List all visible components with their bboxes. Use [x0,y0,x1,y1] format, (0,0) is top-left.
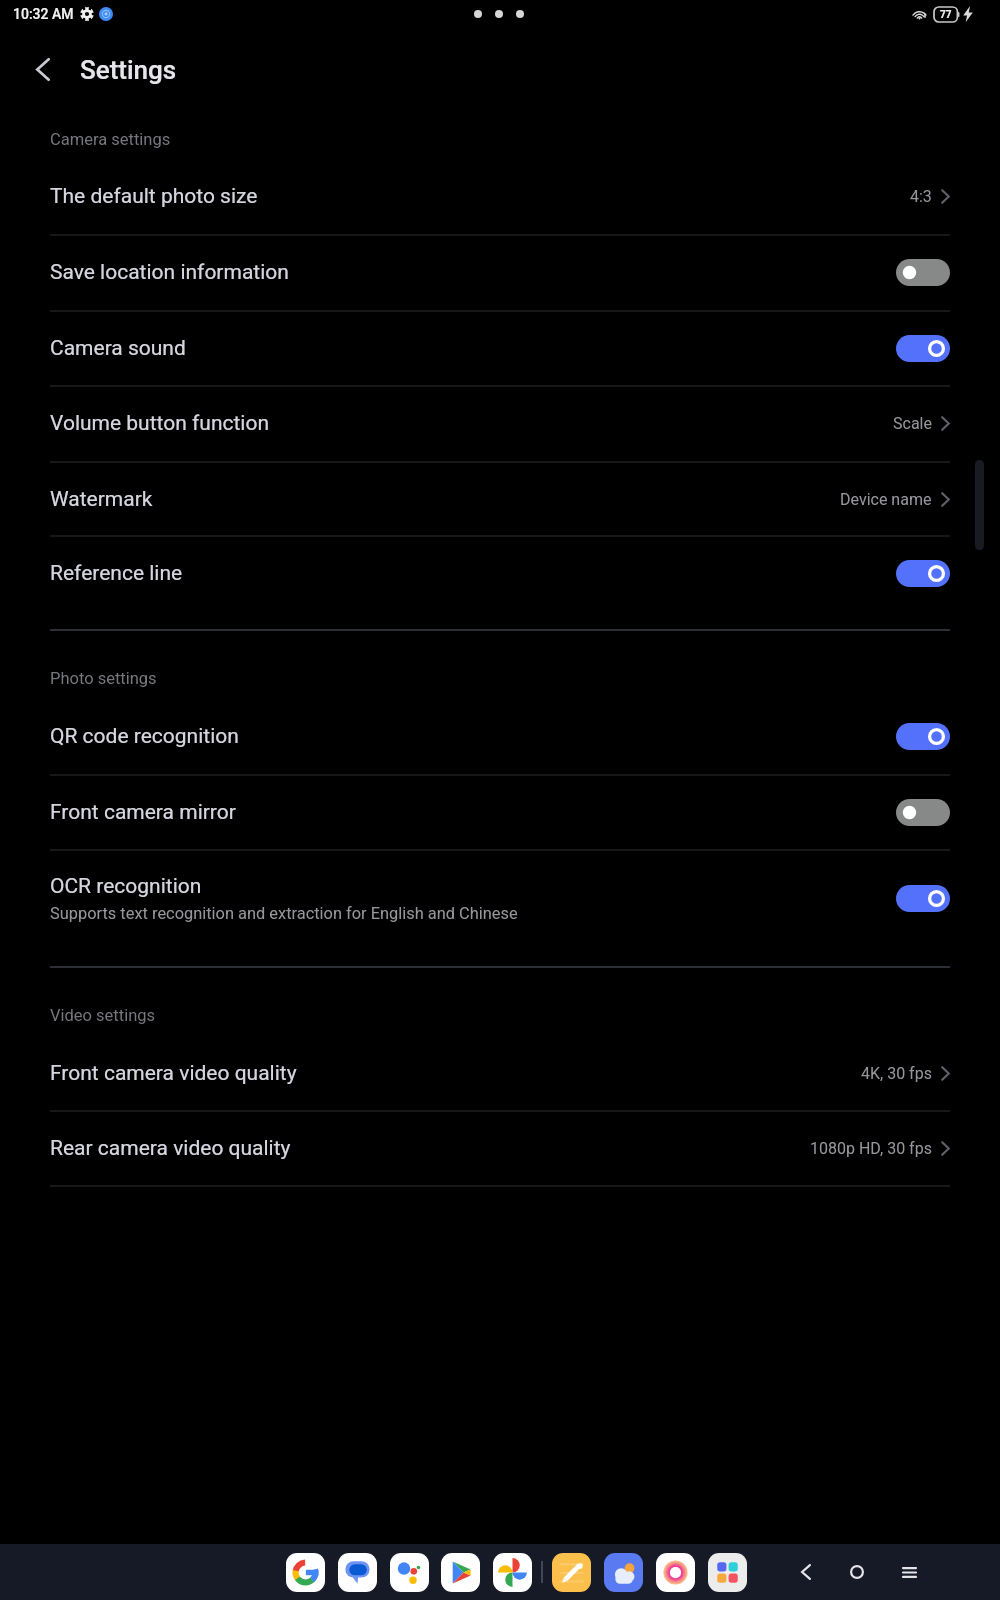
button[interactable]: Assistant [390,1553,429,1592]
button[interactable]: Front camera mirror [0,775,1000,850]
button[interactable]: All apps [708,1553,747,1592]
button[interactable]: Home [835,1550,879,1594]
staticText: 4K, 30 fps [861,1064,932,1083]
staticText: Photo settings [50,669,157,688]
staticText: Front camera mirror [50,800,236,825]
staticText: Rear camera video quality [50,1136,291,1161]
staticText: 1080p HD, 30 fps [810,1139,932,1158]
staticText: Video settings [50,1006,156,1025]
button[interactable]: OCR recognition, on [896,885,950,912]
button[interactable]: Back [20,46,66,92]
button[interactable]: Save location information [0,235,1000,310]
staticText: Front camera video quality [50,1061,297,1086]
button[interactable]: Reference line, on [896,560,950,587]
staticText: Scale [893,414,932,433]
button[interactable]: Notes [552,1553,591,1592]
button[interactable]: Save location information, off [896,259,950,286]
button[interactable]: Camera [656,1553,695,1592]
button[interactable]: Front camera video quality [0,1036,1000,1111]
staticText: Camera sound [50,336,186,361]
staticText: Settings [80,55,177,85]
button[interactable]: QR code recognition, on [896,723,950,750]
staticText: Volume button function [50,411,270,436]
staticText: The default photo size [50,184,258,209]
button[interactable]: Recent apps [887,1550,931,1594]
button[interactable]: Rear camera video quality [0,1111,1000,1186]
button[interactable]: Google [286,1553,325,1592]
staticText: Watermark [50,487,153,512]
button[interactable]: OCR recognition [0,850,1000,947]
button[interactable]: Photos [493,1553,532,1592]
button[interactable]: Reference line [0,536,1000,611]
button[interactable]: Camera sound [0,311,1000,386]
button[interactable]: The default photo size [0,159,1000,234]
button[interactable]: Camera sound, on [896,335,950,362]
staticText: 4:3 [910,187,932,206]
button[interactable]: Weather [604,1553,643,1592]
staticText: 10:32 AM [13,6,74,22]
staticText: Camera settings [50,130,171,149]
button[interactable]: QR code recognition [0,699,1000,774]
button[interactable]: Play Store [441,1553,480,1592]
staticText: QR code recognition [50,724,239,749]
staticText: Device name [840,490,932,509]
staticText: OCR recognition [50,874,202,899]
button[interactable]: Messages [338,1553,377,1592]
button[interactable]: Back [784,1550,828,1594]
button[interactable]: Watermark [0,462,1000,537]
button[interactable]: Front camera mirror, off [896,799,950,826]
staticText: Reference line [50,561,183,586]
staticText: 77 [940,9,952,21]
staticText: Save location information [50,260,289,285]
staticText: Supports text recognition and extraction… [50,904,518,923]
button[interactable]: Volume button function [0,386,1000,461]
